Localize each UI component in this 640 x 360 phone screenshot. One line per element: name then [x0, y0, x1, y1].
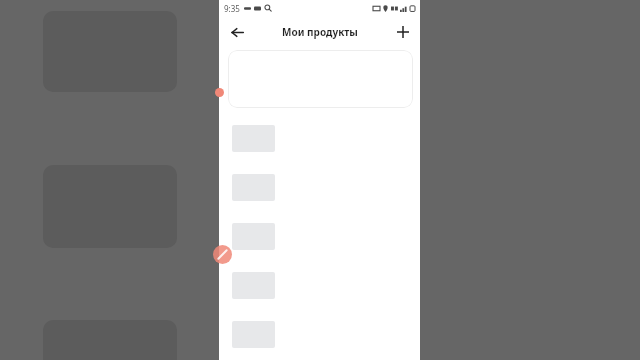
staticText: 9:35: [224, 3, 240, 14]
button[interactable]: Back: [226, 21, 248, 43]
button[interactable]: Add: [392, 21, 414, 43]
staticText: Мои продукты: [282, 25, 358, 39]
button[interactable]: [228, 50, 413, 108]
